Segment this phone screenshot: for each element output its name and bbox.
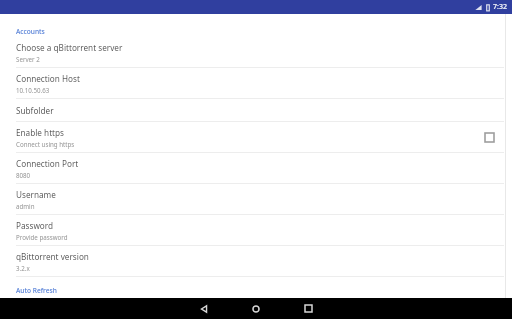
staticText: 7:32 <box>493 2 507 12</box>
button[interactable]: Username <box>0 184 512 214</box>
staticText: Accounts <box>16 27 45 36</box>
staticText: Enable https <box>16 127 65 138</box>
button[interactable]: Enable https checkbox <box>480 128 498 146</box>
staticText: 8080 <box>16 171 31 179</box>
button[interactable]: Password <box>0 215 512 245</box>
button[interactable]: qBittorrent version <box>0 246 512 276</box>
button[interactable]: Back <box>189 298 219 319</box>
staticText: 3.2.x <box>16 264 30 272</box>
staticText: Connection Host <box>16 73 80 84</box>
button[interactable]: Home <box>241 298 271 319</box>
button[interactable]: Recents <box>293 298 323 319</box>
staticText: admin <box>16 202 35 210</box>
button[interactable]: Connection Port <box>0 153 512 183</box>
staticText: Provide password <box>16 233 68 241</box>
staticText: 10.10.50.63 <box>16 86 50 94</box>
staticText: Choose a qBittorrent server <box>16 42 123 53</box>
button[interactable]: Connection Host <box>0 68 512 98</box>
staticText: Auto Refresh <box>16 286 57 295</box>
staticText: Password <box>16 220 54 231</box>
staticText: Connection Port <box>16 158 79 169</box>
staticText: qBittorrent version <box>16 251 89 262</box>
staticText: Username <box>16 189 56 200</box>
button[interactable]: Enable https <box>0 122 512 152</box>
staticText: Subfolder <box>16 105 54 116</box>
staticText: Server 2 <box>16 55 40 63</box>
button[interactable]: Choose a qBittorrent server <box>0 38 512 67</box>
button[interactable]: Subfolder <box>0 99 512 121</box>
staticText: Connect using https <box>16 140 75 148</box>
